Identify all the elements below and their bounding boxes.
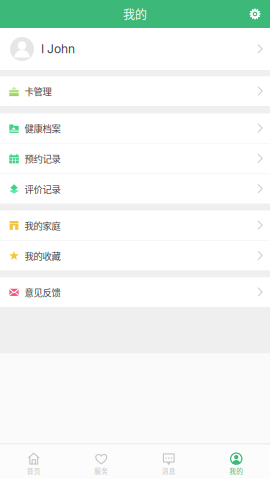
button[interactable]: 我的 (202, 444, 270, 479)
button[interactable]: 我的家庭 (0, 211, 270, 240)
button[interactable]: Settings (240, 0, 270, 28)
button[interactable]: I John (0, 28, 270, 70)
button[interactable]: 健康档案 (0, 113, 270, 143)
staticText: 消息 (162, 466, 176, 476)
staticText: 卡管理 (24, 84, 51, 98)
staticText: I John (41, 42, 75, 56)
staticText: 我的 (229, 466, 243, 476)
staticText: 我的收藏 (24, 249, 60, 262)
button[interactable]: 意见反馈 (0, 277, 270, 307)
button[interactable]: 消息 (135, 444, 202, 479)
button[interactable]: 我的收藏 (0, 241, 270, 270)
staticText: 我的家庭 (24, 219, 60, 232)
staticText: 服务 (94, 466, 108, 476)
staticText: 意见反馈 (24, 285, 60, 299)
staticText: 健康档案 (24, 121, 60, 135)
staticText: 首页 (27, 466, 41, 476)
button[interactable]: 首页 (0, 444, 67, 479)
staticText: 评价记录 (24, 182, 60, 196)
staticText: 预约记录 (24, 152, 60, 165)
button[interactable]: 评价记录 (0, 174, 270, 204)
button[interactable]: 预约记录 (0, 144, 270, 173)
staticText: 我的 (123, 5, 147, 23)
button[interactable]: 卡管理 (0, 76, 270, 106)
button[interactable]: 服务 (67, 444, 135, 479)
